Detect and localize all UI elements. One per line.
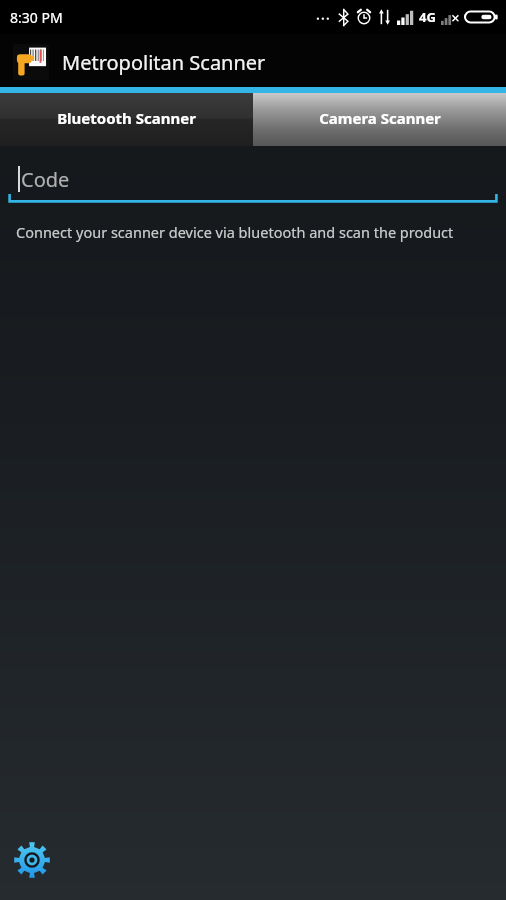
- button[interactable]: Bluetooth Scanner: [0, 90, 253, 146]
- staticText: Metropolitan Scanner: [62, 49, 266, 76]
- button[interactable]: Settings: [8, 836, 56, 884]
- staticText: Code: [21, 166, 70, 193]
- staticText: Bluetooth Scanner: [57, 108, 196, 128]
- button[interactable]: Camera Scanner: [253, 90, 506, 146]
- staticText: 4G: [419, 8, 436, 26]
- staticText: Connect your scanner device via bluetoot…: [16, 222, 454, 242]
- button[interactable]: Code: [7, 158, 499, 204]
- staticText: Camera Scanner: [319, 108, 441, 128]
- staticText: 8:30 PM: [10, 8, 63, 27]
